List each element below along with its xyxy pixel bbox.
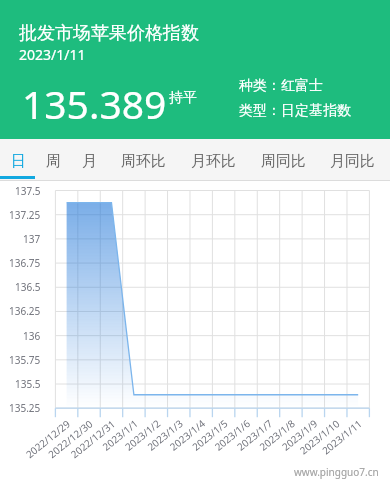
button[interactable]: 周同比 xyxy=(249,141,318,181)
staticText: 周 xyxy=(46,152,61,171)
button[interactable]: 日 xyxy=(0,141,37,181)
button[interactable]: 周 xyxy=(35,141,72,181)
staticText: 周环比 xyxy=(121,152,166,171)
staticText: 月 xyxy=(82,152,97,171)
button[interactable]: 周环比 xyxy=(109,141,178,181)
staticText: 周同比 xyxy=(261,152,306,171)
button[interactable]: 月环比 xyxy=(179,141,248,181)
staticText: 135.389 xyxy=(22,77,167,130)
staticText: 月环比 xyxy=(191,152,236,171)
staticText: 2023/1/11 xyxy=(19,45,86,64)
staticText: 批发市场苹果价格指数 xyxy=(19,22,199,45)
staticText: 日 xyxy=(11,152,26,171)
button[interactable]: 月同比 xyxy=(318,141,387,181)
staticText: 持平 xyxy=(169,89,197,107)
button[interactable]: 月 xyxy=(71,141,108,181)
staticText: 种类：红富士 xyxy=(239,77,323,95)
staticText: 月同比 xyxy=(330,152,375,171)
staticText: 类型：日定基指数 xyxy=(239,102,351,120)
